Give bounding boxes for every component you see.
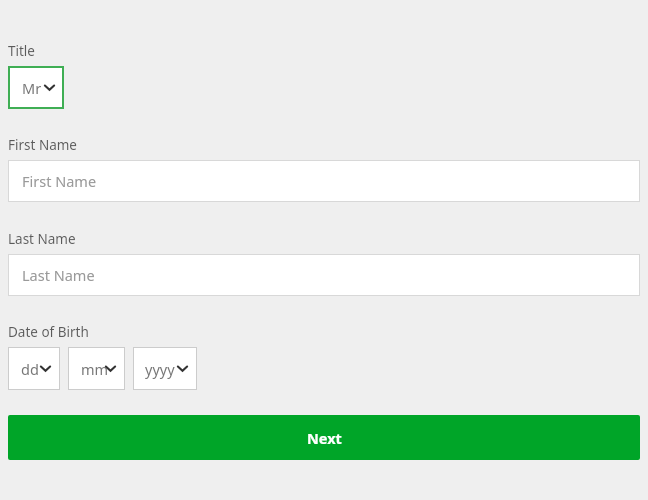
staticText: Date of Birth xyxy=(8,323,89,341)
staticText: dd xyxy=(21,359,39,379)
button[interactable]: Year xyxy=(133,347,197,390)
staticText: First Name xyxy=(8,136,77,154)
button[interactable]: Month xyxy=(68,347,125,390)
staticText: First Name xyxy=(22,171,97,191)
staticText: mm xyxy=(81,359,109,379)
staticText: Mr xyxy=(22,78,42,98)
staticText: Last Name xyxy=(22,265,95,285)
button[interactable]: Title xyxy=(8,66,64,109)
staticText: Last Name xyxy=(8,230,76,248)
button[interactable]: Day xyxy=(8,347,60,390)
staticText: Next xyxy=(307,428,342,448)
button[interactable]: Last Name xyxy=(8,254,640,296)
staticText: yyyy xyxy=(145,359,175,379)
button[interactable]: First Name xyxy=(8,160,640,202)
staticText: Title xyxy=(8,42,35,60)
button[interactable]: Next xyxy=(8,415,640,460)
